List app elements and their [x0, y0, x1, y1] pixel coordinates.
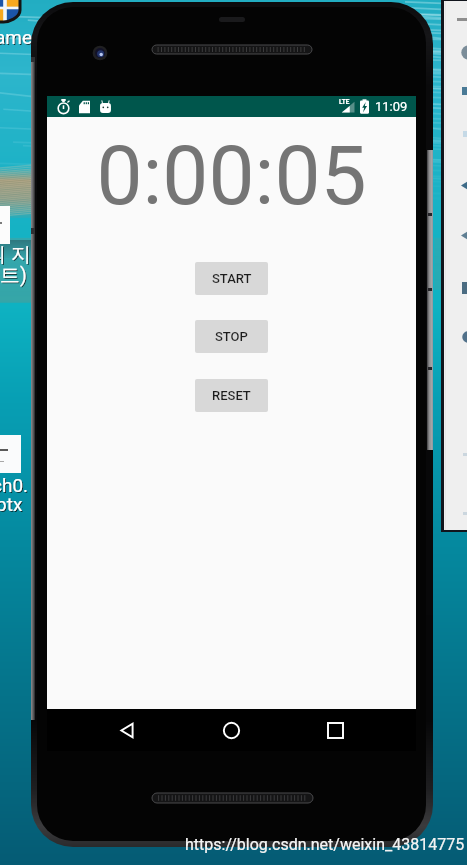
staticText: ame	[0, 27, 34, 49]
staticText: https://blog.csdn.net/weixin_43814775	[185, 835, 465, 854]
staticText: 트)	[1, 264, 28, 289]
staticText: ch0.	[0, 474, 29, 496]
button[interactable]: Back	[109, 712, 145, 748]
staticText: 트)	[0, 263, 27, 288]
staticText: ame	[0, 26, 33, 48]
staticText: STOP	[215, 329, 248, 344]
staticText: START	[212, 271, 252, 286]
staticText: 0:00:05	[47, 128, 416, 224]
button[interactable]: Recent apps	[317, 712, 353, 748]
staticText: ptx	[0, 493, 23, 515]
staticText: 11:09	[375, 99, 408, 114]
staticText: LTE	[339, 98, 350, 106]
button[interactable]: STOP	[195, 320, 268, 353]
staticText: 의 지	[0, 243, 32, 268]
button[interactable]: RESET	[195, 379, 268, 412]
button[interactable]: Home	[213, 712, 249, 748]
staticText: ptx	[0, 494, 24, 516]
staticText: ch0.	[0, 475, 30, 497]
staticText: 의 지	[0, 242, 31, 267]
staticText: RESET	[212, 388, 251, 403]
button[interactable]: START	[195, 262, 268, 295]
